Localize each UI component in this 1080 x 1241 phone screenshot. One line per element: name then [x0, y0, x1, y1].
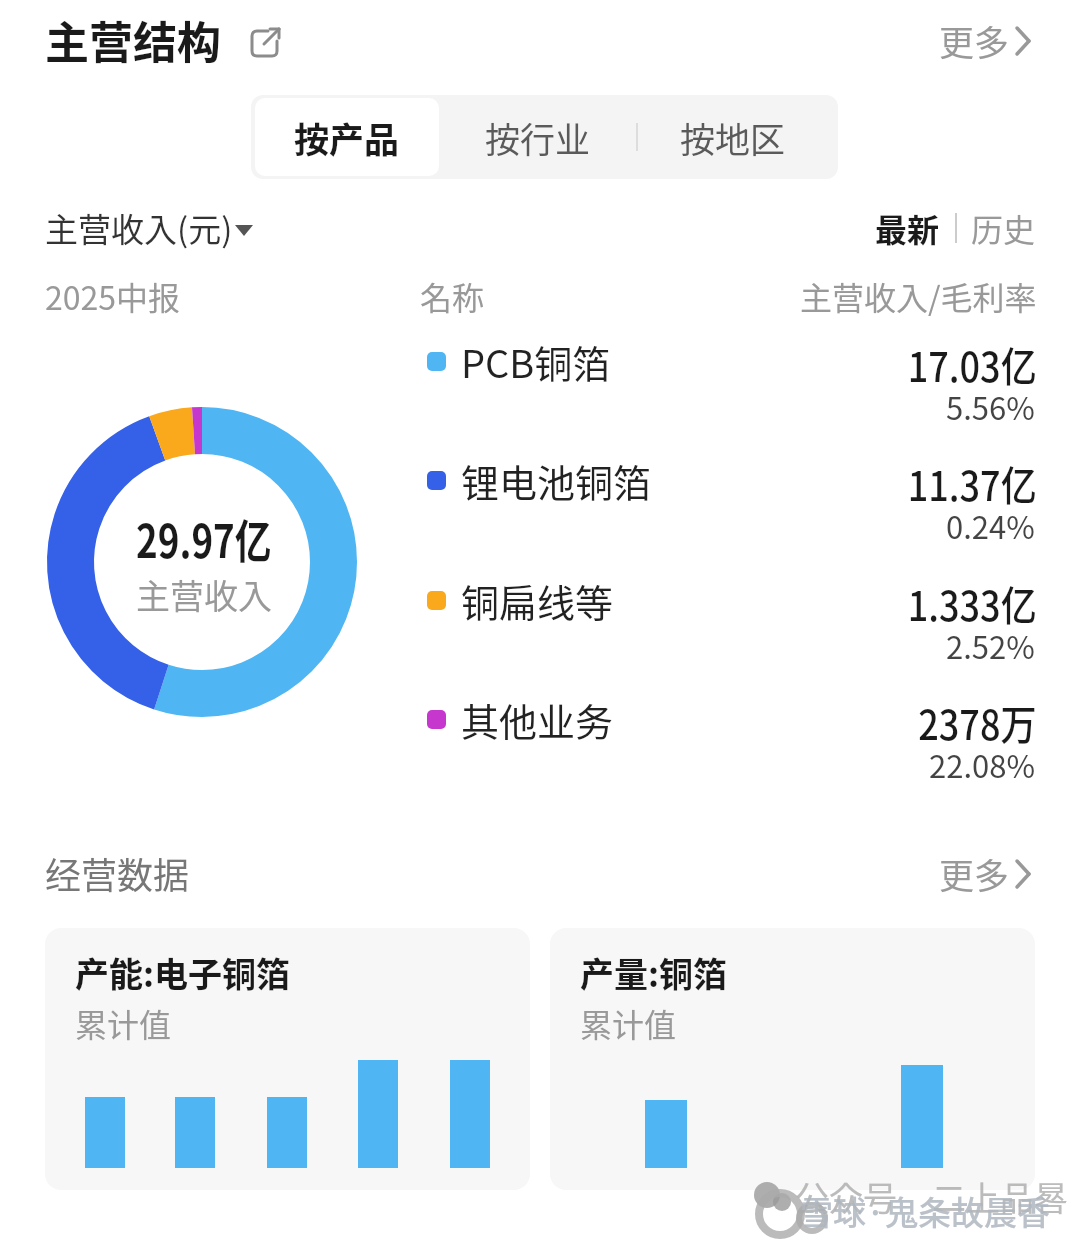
staticText: 锂电池铜箔 [461, 453, 652, 508]
staticText: 2025中报 [45, 273, 181, 319]
button[interactable]: 最新 [850, 198, 940, 258]
button[interactable] [420, 313, 1040, 409]
staticText: 2.52% [946, 623, 1035, 668]
staticText: 历史 [971, 205, 1036, 251]
staticText: 按行业 [485, 112, 591, 163]
staticText: 累计值 [75, 1000, 172, 1046]
staticText: 0.24% [946, 503, 1035, 548]
staticText: 1.333亿 [908, 573, 1037, 632]
button[interactable]: 按产品 [255, 98, 439, 176]
staticText: 更多 [939, 848, 1010, 899]
staticText: 主营收入 [136, 570, 272, 619]
staticText: 主营结构 [45, 8, 221, 72]
staticText: 按地区 [680, 112, 786, 163]
staticText: 主营收入/毛利率 [800, 273, 1037, 319]
staticText: 主营收入(元) [45, 204, 233, 252]
staticText: 按产品 [294, 112, 400, 163]
staticText: 其他业务 [461, 692, 614, 747]
staticText: 17.03亿 [908, 334, 1037, 393]
button[interactable] [930, 10, 1040, 70]
staticText: 公众号 [795, 1172, 897, 1221]
button[interactable] [930, 843, 1040, 903]
staticText: 29.97亿 [136, 505, 272, 567]
button[interactable]: 历史 [971, 198, 1041, 258]
button[interactable]: 产能:电子铜箔 [45, 928, 530, 1190]
staticText: 二上品晷 [932, 1172, 1068, 1221]
staticText: 产量:铜箔 [580, 948, 728, 997]
button[interactable] [420, 552, 1040, 648]
staticText: 雪球·鬼条故晨香 [800, 1187, 1050, 1235]
button[interactable] [420, 671, 1040, 767]
staticText: 22.08% [929, 742, 1035, 787]
staticText: 最新 [875, 205, 940, 251]
button[interactable] [420, 432, 1040, 528]
staticText: 铜扁线等 [461, 573, 614, 628]
staticText: 名称 [420, 273, 485, 319]
staticText: 5.56% [946, 384, 1035, 429]
staticText: PCB铜箔 [461, 334, 611, 389]
button[interactable]: 产量:铜箔 [550, 928, 1035, 1190]
staticText: 11.37亿 [908, 453, 1037, 512]
staticText: 累计值 [580, 1000, 677, 1046]
staticText: 2378万 [918, 692, 1037, 751]
button[interactable]: 按地区 [640, 98, 826, 176]
staticText: 更多 [939, 15, 1010, 66]
staticText: 经营数据 [45, 847, 190, 899]
staticText: 产能:电子铜箔 [75, 948, 291, 997]
button[interactable]: 主营收入(元) [45, 198, 260, 258]
button[interactable]: 按行业 [445, 98, 631, 176]
